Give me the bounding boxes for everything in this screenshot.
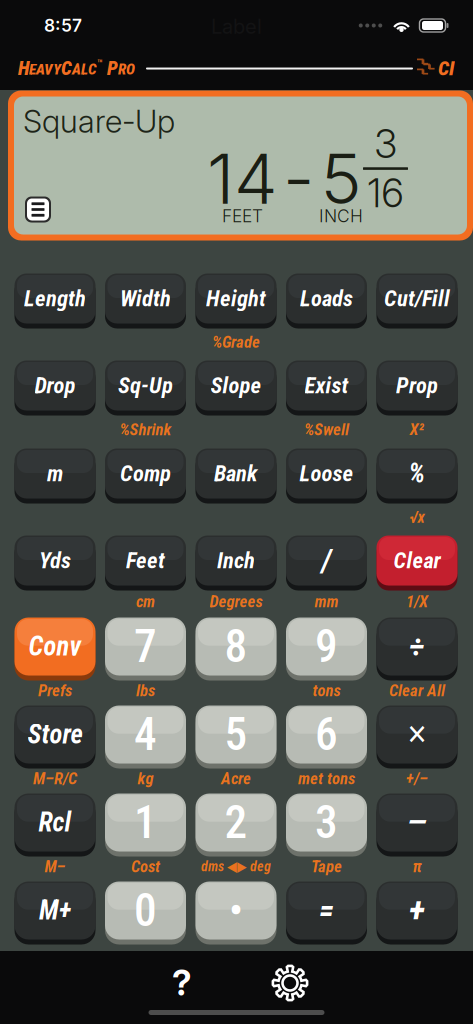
staticText: / bbox=[321, 542, 331, 578]
button[interactable]: Exist bbox=[286, 358, 367, 413]
staticText: = bbox=[319, 892, 334, 928]
staticText: Exist bbox=[304, 372, 348, 399]
staticText: 7 bbox=[134, 620, 157, 673]
staticText: mm bbox=[314, 592, 338, 611]
button[interactable]: 4 bbox=[105, 703, 186, 766]
staticText: M–R/C bbox=[33, 769, 77, 788]
button[interactable]: Conv bbox=[14, 615, 95, 678]
button[interactable]: Help bbox=[151, 957, 213, 1009]
button[interactable]: 7 bbox=[105, 615, 186, 678]
button[interactable]: Drop bbox=[14, 358, 95, 413]
staticText: M– bbox=[44, 857, 65, 876]
staticText: Tape bbox=[311, 857, 342, 876]
button[interactable]: • bbox=[195, 879, 276, 942]
staticText: Prop bbox=[396, 372, 438, 399]
staticText: — bbox=[407, 805, 426, 840]
button[interactable]: Loads bbox=[286, 271, 367, 326]
button[interactable]: ✕ bbox=[376, 703, 457, 766]
staticText: Drop bbox=[34, 372, 75, 399]
staticText: M+ bbox=[39, 895, 71, 926]
button[interactable]: M+ bbox=[14, 879, 95, 942]
button[interactable]: + bbox=[376, 879, 457, 942]
button[interactable]: % bbox=[376, 446, 457, 501]
button[interactable]: Width bbox=[105, 271, 186, 326]
staticText: Conv bbox=[28, 631, 81, 662]
button[interactable]: Yds bbox=[14, 533, 95, 588]
button[interactable]: = bbox=[286, 879, 367, 942]
staticText: + bbox=[409, 890, 425, 931]
button[interactable]: Bank bbox=[195, 446, 276, 501]
staticText: • bbox=[229, 887, 243, 934]
staticText: lbs bbox=[136, 681, 155, 700]
button[interactable]: Prop bbox=[376, 358, 457, 413]
staticText: dms ◀▶ deg bbox=[201, 858, 271, 875]
staticText: Cut/Fill bbox=[384, 285, 450, 312]
button[interactable]: Rcl bbox=[14, 791, 95, 854]
staticText: Length bbox=[24, 285, 86, 312]
staticText: Degrees bbox=[209, 592, 262, 611]
button[interactable]: Slope bbox=[195, 358, 276, 413]
staticText: 1/X bbox=[406, 592, 428, 611]
button[interactable]: Loose bbox=[286, 446, 367, 501]
button[interactable]: 2 bbox=[195, 791, 276, 854]
staticText: Loads bbox=[300, 285, 353, 312]
staticText: Width bbox=[120, 285, 171, 312]
staticText: ÷ bbox=[409, 628, 425, 665]
button[interactable]: Clear bbox=[376, 533, 457, 588]
staticText: 5 bbox=[224, 708, 247, 761]
button[interactable]: 0 bbox=[105, 879, 186, 942]
button[interactable]: 3 bbox=[286, 791, 367, 854]
staticText: Square-Up bbox=[23, 102, 175, 140]
staticText: %Swell bbox=[304, 420, 349, 439]
staticText: tons bbox=[312, 681, 340, 700]
staticText: H bbox=[18, 57, 29, 80]
staticText: CI bbox=[438, 57, 454, 80]
button[interactable]: 8 bbox=[195, 615, 276, 678]
button[interactable]: m bbox=[14, 446, 95, 501]
staticText: Height bbox=[206, 285, 266, 312]
staticText: 6 bbox=[315, 708, 338, 761]
staticText: Prefs bbox=[38, 681, 72, 700]
staticText: 3 bbox=[374, 120, 396, 167]
button[interactable]: Store bbox=[14, 703, 95, 766]
button[interactable]: 6 bbox=[286, 703, 367, 766]
button[interactable]: Length bbox=[14, 271, 95, 326]
button[interactable]: 1 bbox=[105, 791, 186, 854]
staticText: 8 bbox=[224, 620, 247, 673]
staticText: Slope bbox=[210, 372, 261, 399]
button[interactable]: Comp bbox=[105, 446, 186, 501]
staticText: FEET bbox=[222, 205, 263, 226]
staticText: m bbox=[47, 460, 63, 487]
button[interactable]: Menu bbox=[20, 191, 56, 227]
button[interactable]: Settings bbox=[259, 957, 321, 1009]
staticText: %Grade bbox=[212, 332, 260, 352]
button[interactable]: — bbox=[376, 791, 457, 854]
staticText: 1 bbox=[134, 796, 157, 849]
staticText: Store bbox=[27, 719, 82, 750]
button[interactable]: / bbox=[286, 533, 367, 588]
staticText: Label bbox=[211, 14, 262, 39]
staticText: 3 bbox=[315, 796, 338, 849]
button[interactable]: Cut/Fill bbox=[376, 271, 457, 326]
button[interactable]: 5 bbox=[195, 703, 276, 766]
staticText: EAVY bbox=[29, 60, 61, 78]
staticText: 5 bbox=[320, 136, 361, 220]
staticText: INCH bbox=[319, 205, 363, 226]
staticText: 8:57 bbox=[44, 15, 82, 36]
button[interactable]: Height bbox=[195, 271, 276, 326]
staticText: - bbox=[283, 136, 314, 220]
staticText: Rcl bbox=[38, 807, 71, 838]
button[interactable]: ÷ bbox=[376, 615, 457, 678]
staticText: ? bbox=[172, 962, 192, 1004]
button[interactable]: Feet bbox=[105, 533, 186, 588]
button[interactable]: Inch bbox=[195, 533, 276, 588]
button[interactable]: Sq-Up bbox=[105, 358, 186, 413]
staticText: Comp bbox=[120, 460, 171, 487]
button[interactable]: 9 bbox=[286, 615, 367, 678]
